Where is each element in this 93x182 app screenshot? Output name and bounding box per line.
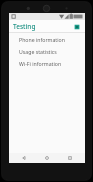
button[interactable]: Phone information [9, 33, 85, 45]
button[interactable]: Home [39, 153, 55, 163]
staticText: Usage statistics [19, 48, 57, 55]
staticText: Phone information [19, 36, 65, 43]
button[interactable]: Recent apps [62, 153, 78, 163]
button[interactable]: Usage statistics [9, 45, 85, 57]
button[interactable]: Wi-Fi information [9, 57, 85, 69]
staticText: Testing [13, 22, 36, 31]
button[interactable]: Back [16, 153, 32, 163]
staticText: Wi-Fi information [19, 60, 62, 67]
button[interactable]: Action [72, 22, 82, 32]
